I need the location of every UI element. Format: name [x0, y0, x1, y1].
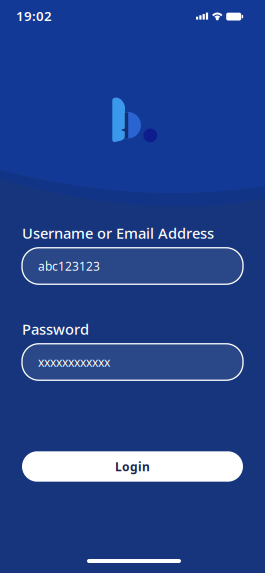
staticText: Password — [22, 319, 89, 339]
button[interactable]: abc123123 — [22, 248, 243, 284]
staticText: 19:02 — [16, 7, 52, 25]
button[interactable]: xxxxxxxxxxxx — [22, 344, 243, 380]
button[interactable]: Login — [22, 451, 243, 482]
staticText: Login — [115, 458, 150, 474]
staticText: Username or Email Address — [22, 223, 214, 243]
staticText: abc123123 — [38, 258, 100, 274]
staticText: xxxxxxxxxxxx — [38, 354, 110, 370]
